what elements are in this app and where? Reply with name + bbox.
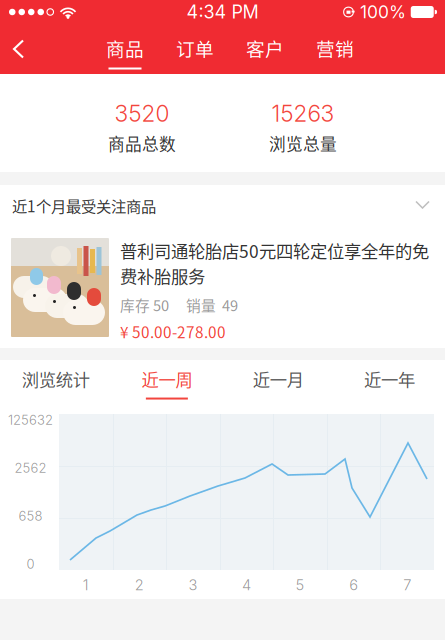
staticText: 658 — [18, 508, 42, 524]
staticText: 100% — [360, 1, 406, 22]
staticText: 商品总数 — [108, 131, 176, 155]
staticText: 客户 — [246, 34, 284, 61]
staticText: 4:34 PM — [186, 1, 258, 23]
staticText: 0 — [26, 556, 34, 572]
button[interactable]: 营销 — [300, 24, 370, 74]
staticText: 6 — [349, 576, 358, 594]
staticText: 普利司通轮胎店50元四轮定位享全年的免费补胎服务 — [120, 238, 429, 288]
staticText: 2562 — [14, 460, 46, 476]
staticText: 2 — [135, 576, 144, 594]
staticText: 近一周 — [141, 366, 192, 392]
staticText: 近一年 — [364, 366, 415, 392]
staticText: ¥ 50.00-278.00 — [120, 320, 226, 343]
staticText: 订单 — [176, 34, 214, 61]
staticText: 3520 — [114, 100, 169, 127]
staticText: 4 — [242, 576, 251, 594]
staticText: 浏览总量 — [269, 131, 337, 155]
staticText: 15263 — [271, 100, 334, 127]
button[interactable]: 近一周 — [111, 360, 222, 403]
button[interactable]: 客户 — [230, 24, 300, 74]
staticText: 销量 49 — [186, 294, 238, 315]
staticText: 近1个月最受关注商品 — [12, 194, 156, 217]
staticText: 营销 — [316, 34, 354, 61]
button[interactable]: 近一年 — [334, 360, 445, 403]
staticText: 库存 50 — [120, 294, 169, 315]
button[interactable]: 商品 — [90, 24, 160, 74]
staticText: 3 — [188, 576, 197, 594]
button[interactable]: 近一月 — [222, 360, 334, 403]
button[interactable]: 普利司通轮胎店50元四轮定位享全年的免费补胎服务 — [0, 226, 445, 348]
button[interactable]: 浏览统计 — [0, 360, 111, 403]
staticText: 1 — [83, 576, 89, 594]
button[interactable]: 近1个月最受关注商品 — [0, 185, 445, 226]
staticText: 近一月 — [253, 366, 304, 392]
staticText: 7 — [403, 576, 411, 594]
staticText: 浏览统计 — [22, 366, 90, 392]
staticText: 125632 — [8, 412, 53, 428]
button[interactable]: 订单 — [160, 24, 230, 74]
staticText: 商品 — [106, 34, 144, 61]
staticText: 5 — [296, 576, 305, 594]
button[interactable]: Back — [0, 24, 48, 74]
